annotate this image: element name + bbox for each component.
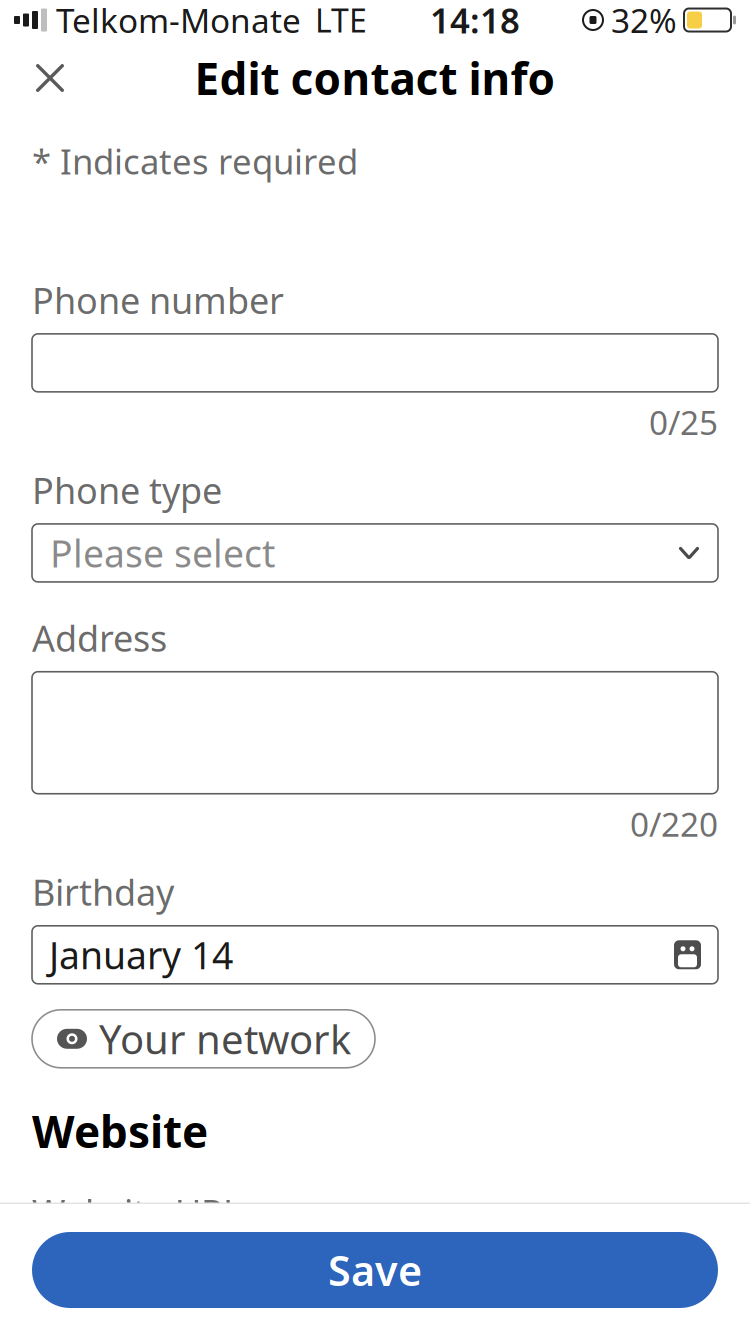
button[interactable]: Phone number field <box>32 324 718 392</box>
staticText: Phone type <box>32 466 222 514</box>
button[interactable]: Save <box>32 1232 718 1308</box>
staticText: Birthday <box>32 868 174 916</box>
staticText: Telkom-Monate <box>56 0 301 42</box>
button[interactable]: Birthday, January 14 <box>32 916 718 984</box>
staticText: Edit contact info <box>194 49 555 107</box>
staticText: January 14 <box>49 930 233 980</box>
staticText: Phone number <box>32 276 284 324</box>
staticText: Please select <box>50 528 275 578</box>
staticText: 32% <box>611 0 677 42</box>
staticText: Your network <box>99 1012 351 1065</box>
staticText: * Indicates required <box>32 138 358 184</box>
staticText: Website <box>32 1102 208 1160</box>
staticText: Address <box>32 614 167 662</box>
button[interactable]: Website URL field <box>32 1236 718 1304</box>
staticText: 14:18 <box>430 0 520 43</box>
button[interactable]: Close <box>20 51 80 105</box>
staticText: Website URL <box>32 1188 242 1236</box>
button[interactable]: Birthday visibility: Your network <box>32 1010 375 1068</box>
staticText: LTE <box>315 0 367 41</box>
staticText: 0/220 <box>630 802 718 846</box>
button[interactable]: Phone type, Please select <box>32 514 718 582</box>
staticText: 0/25 <box>649 400 718 444</box>
button[interactable]: Address field <box>32 662 718 794</box>
staticText: Save <box>328 1243 422 1297</box>
